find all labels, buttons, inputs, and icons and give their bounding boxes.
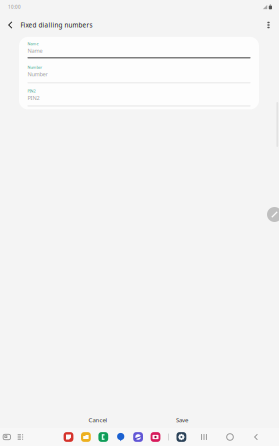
staticText: Name bbox=[27, 41, 38, 46]
button[interactable]: Cancel bbox=[56, 412, 140, 427]
button[interactable]: Camera bbox=[151, 432, 160, 442]
staticText: Save bbox=[176, 416, 188, 424]
button[interactable]: Save bbox=[140, 412, 224, 427]
staticText: Cancel bbox=[88, 416, 107, 424]
button[interactable]: Internet bbox=[133, 432, 143, 442]
staticText: Name bbox=[27, 47, 42, 54]
button[interactable]: Phone bbox=[98, 432, 108, 442]
button[interactable]: Recents bbox=[191, 429, 217, 445]
button[interactable]: Edge panel bbox=[14, 429, 27, 445]
button[interactable]: Edit bbox=[267, 207, 279, 222]
staticText: 10:00 bbox=[8, 4, 21, 10]
button[interactable]: Back bbox=[2, 14, 18, 36]
staticText: Fixed dialling numbers bbox=[20, 21, 92, 29]
button[interactable]: More options bbox=[261, 14, 275, 36]
button[interactable]: Samsung Notes bbox=[64, 432, 73, 442]
staticText: PIN2 bbox=[27, 88, 35, 94]
staticText: Number bbox=[27, 70, 47, 78]
button[interactable]: Multi window bbox=[0, 429, 14, 445]
button[interactable]: My Files bbox=[81, 432, 91, 442]
button[interactable]: Home bbox=[217, 429, 243, 445]
button[interactable]: Messages bbox=[116, 432, 126, 442]
button[interactable]: Settings bbox=[176, 432, 186, 442]
staticText: Number bbox=[27, 65, 42, 70]
staticText: PIN2 bbox=[27, 94, 39, 102]
button[interactable]: Back bbox=[243, 429, 269, 445]
